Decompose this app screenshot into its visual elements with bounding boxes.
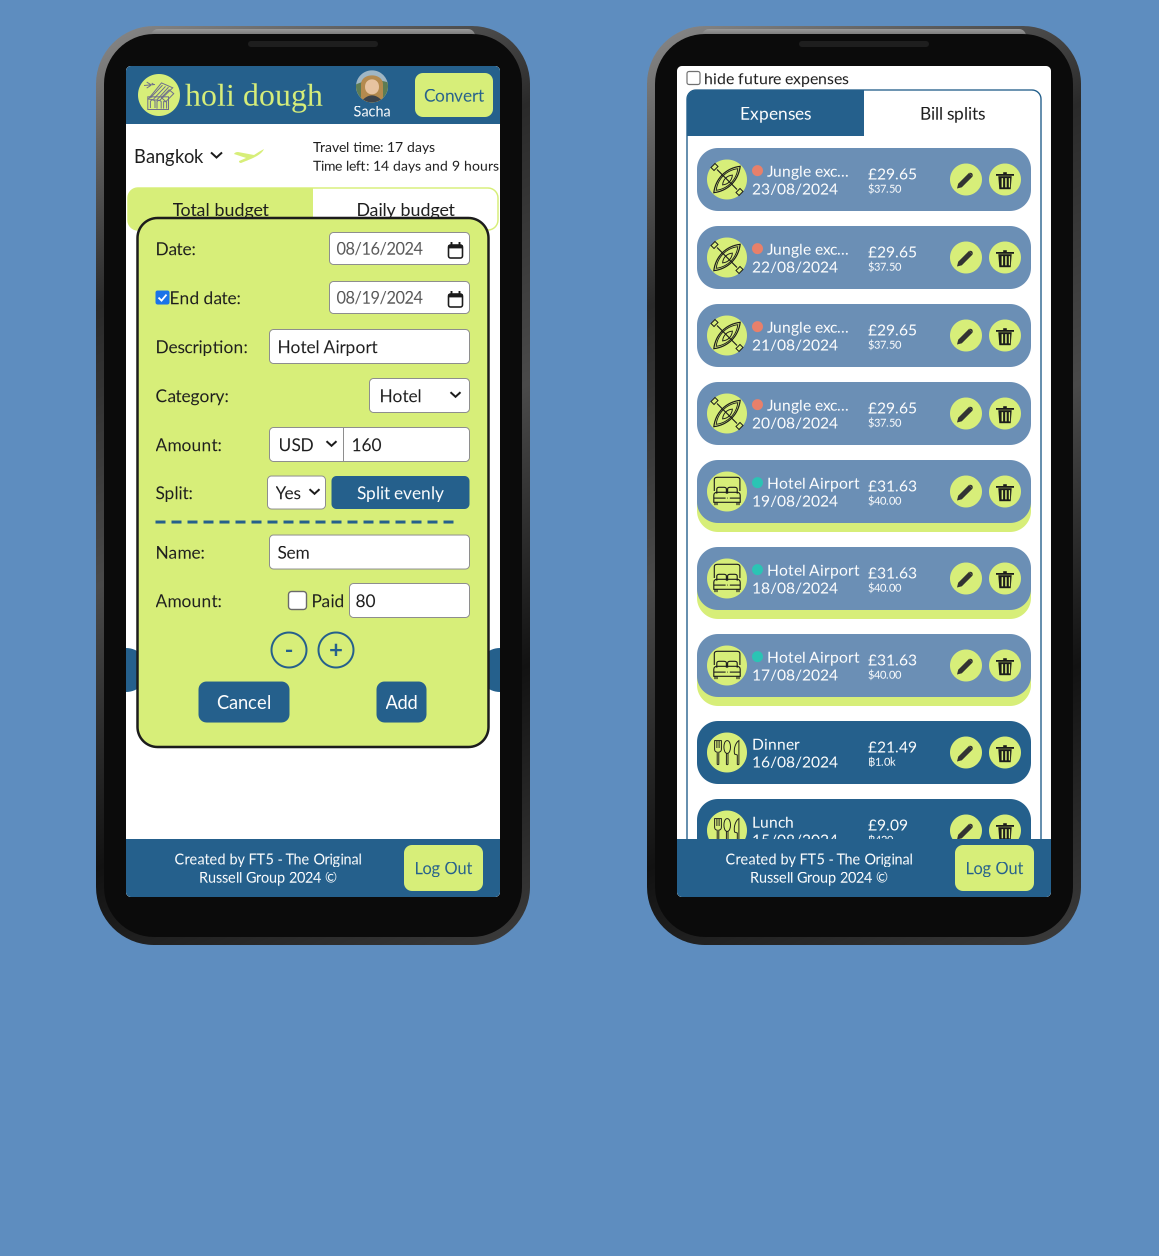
button[interactable]: Convert xyxy=(415,73,493,117)
button[interactable]: Remove person xyxy=(271,632,306,667)
staticText: Travel time: 17 days xyxy=(313,138,435,155)
button[interactable]: Edit xyxy=(950,562,982,594)
button[interactable]: Bangkok xyxy=(134,144,222,168)
staticText: Category: xyxy=(155,385,228,406)
button[interactable]: USD xyxy=(269,427,343,461)
staticText: Total budget xyxy=(172,198,268,220)
button[interactable]: Hotel Airport xyxy=(697,547,1031,619)
button[interactable]: Delete xyxy=(989,241,1021,273)
staticText: Cancel xyxy=(217,691,271,713)
staticText: £21.49 xyxy=(868,737,917,756)
button[interactable]: End date enabled xyxy=(155,290,169,304)
staticText: £29.65 xyxy=(868,164,917,183)
button[interactable]: Expenses xyxy=(687,90,864,136)
staticText: Split evenly xyxy=(357,482,444,503)
staticText: + xyxy=(329,635,343,663)
staticText: £29.65 xyxy=(868,320,917,339)
staticText: Amount: xyxy=(155,434,221,455)
button[interactable]: Jungle exc... xyxy=(697,226,1031,289)
staticText: Hotel Airport xyxy=(767,560,860,579)
button[interactable]: Add xyxy=(376,681,426,722)
staticText: Time left: 14 days and 9 hours xyxy=(313,157,499,174)
staticText: Jungle exc... xyxy=(767,161,849,180)
button[interactable]: Edit xyxy=(950,241,982,273)
staticText: 20/08/2024 xyxy=(752,413,838,432)
staticText: Add xyxy=(385,691,417,713)
button[interactable]: Lunch xyxy=(697,799,1031,862)
button[interactable]: Hotel Airport xyxy=(697,634,1031,706)
staticText: hide future expenses xyxy=(704,68,849,87)
button[interactable]: Edit xyxy=(950,736,982,768)
button[interactable]: Delete xyxy=(989,163,1021,195)
button[interactable]: Delete xyxy=(989,814,1021,846)
staticText: ฿420 xyxy=(868,833,893,846)
button[interactable]: Edit xyxy=(950,475,982,507)
button[interactable]: Next xyxy=(478,648,522,692)
button[interactable]: Hide future expenses xyxy=(687,71,700,84)
staticText: 16/08/2024 xyxy=(752,752,838,771)
button[interactable]: Edit xyxy=(950,814,982,846)
staticText: 19/08/2024 xyxy=(752,491,838,510)
button[interactable]: Add person xyxy=(318,632,353,667)
button[interactable]: Dinner xyxy=(697,721,1031,784)
button[interactable]: Previous xyxy=(104,648,148,692)
button[interactable]: Delete xyxy=(989,475,1021,507)
button[interactable]: Total budget xyxy=(128,188,313,230)
button[interactable]: Yes xyxy=(267,476,325,509)
staticText: $40.00 xyxy=(868,668,901,681)
staticText: Description: xyxy=(155,336,247,357)
button[interactable]: 08/19/2024 xyxy=(329,281,469,313)
staticText: $37.50 xyxy=(868,416,901,429)
staticText: $40.00 xyxy=(868,494,901,507)
button[interactable]: Jungle exc... xyxy=(697,304,1031,367)
button[interactable]: Delete xyxy=(989,319,1021,351)
button[interactable]: Paid xyxy=(288,591,306,609)
button[interactable]: Sacha xyxy=(349,69,395,121)
button[interactable]: Delete xyxy=(989,736,1021,768)
staticText: 18/08/2024 xyxy=(752,578,838,597)
staticText: Bangkok xyxy=(134,145,203,167)
staticText: Jungle exc... xyxy=(767,239,849,258)
staticText: - xyxy=(284,635,293,663)
button[interactable]: Jungle exc... xyxy=(697,382,1031,445)
staticText: 160 xyxy=(351,434,381,455)
button[interactable]: Edit xyxy=(950,397,982,429)
button[interactable]: Jungle exc... xyxy=(697,148,1031,211)
staticText: $37.50 xyxy=(868,338,901,351)
button[interactable]: Cancel xyxy=(198,681,289,722)
staticText: Sem xyxy=(277,542,309,562)
staticText: Log Out xyxy=(965,858,1023,878)
button[interactable]: Delete xyxy=(989,397,1021,429)
staticText: Jungle exc... xyxy=(767,395,849,414)
staticText: 21/08/2024 xyxy=(752,335,838,354)
button[interactable]: Split evenly xyxy=(331,476,469,509)
button[interactable]: Edit xyxy=(950,649,982,681)
button[interactable]: Bill splits xyxy=(864,90,1041,136)
button[interactable]: Log Out xyxy=(404,845,483,891)
staticText: Hotel Airport xyxy=(277,336,377,357)
button[interactable]: Edit xyxy=(950,319,982,351)
staticText: £29.65 xyxy=(868,398,917,417)
button[interactable]: Delete xyxy=(989,562,1021,594)
button[interactable]: Hotel Airport xyxy=(697,460,1031,532)
button[interactable]: Log Out xyxy=(955,845,1034,891)
button[interactable]: Delete xyxy=(989,649,1021,681)
staticText: $40.00 xyxy=(868,581,901,594)
staticText: Name: xyxy=(155,542,204,562)
staticText: Russell Group 2024 © xyxy=(750,868,888,886)
staticText: 22/08/2024 xyxy=(752,257,838,276)
staticText: Bill splits xyxy=(920,103,985,123)
staticText: Daily budget xyxy=(356,198,454,220)
button[interactable]: Hotel xyxy=(369,378,469,412)
button[interactable]: Daily budget xyxy=(313,188,498,230)
staticText: £29.65 xyxy=(868,242,917,261)
staticText: $37.50 xyxy=(868,260,901,273)
button[interactable]: Edit xyxy=(950,163,982,195)
staticText: holi dough xyxy=(185,77,323,113)
staticText: Hotel Airport xyxy=(767,473,860,492)
staticText: Russell Group 2024 © xyxy=(199,868,337,886)
button[interactable]: 08/16/2024 xyxy=(329,232,469,264)
staticText: Log Out xyxy=(414,858,472,878)
staticText: 23/08/2024 xyxy=(752,179,838,198)
staticText: 17/08/2024 xyxy=(752,665,838,684)
